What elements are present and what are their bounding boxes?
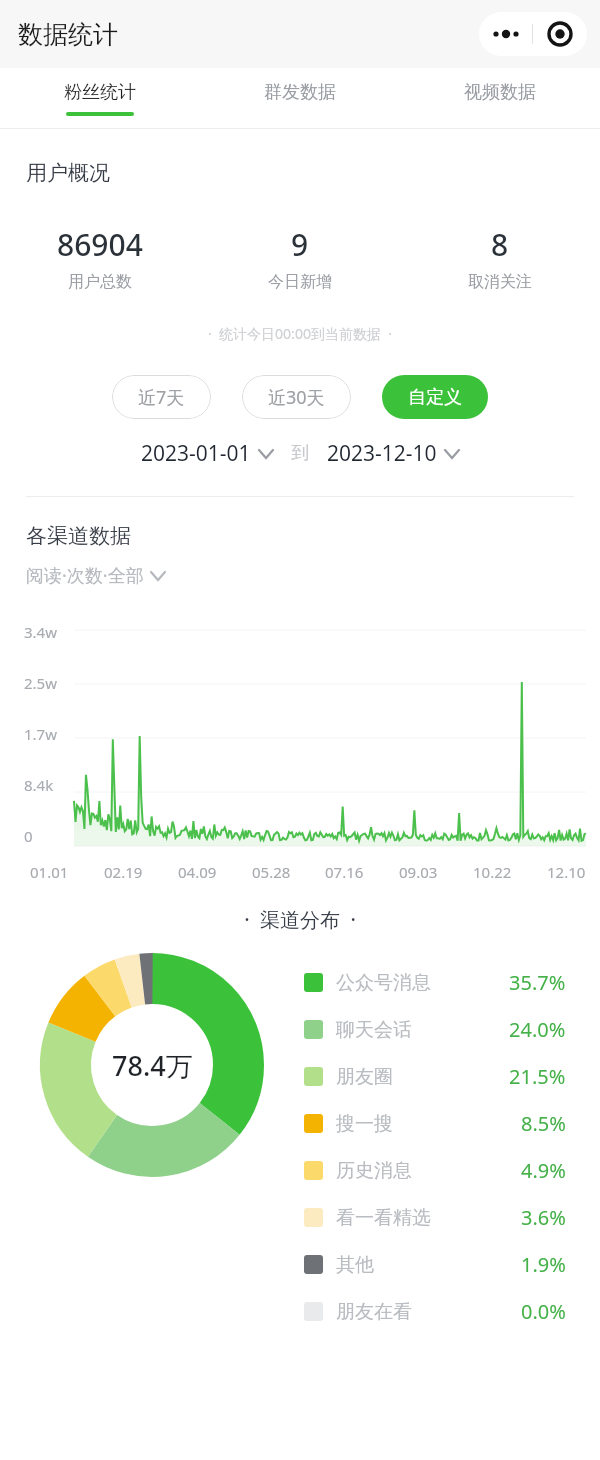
button[interactable]: 视频数据 bbox=[400, 68, 600, 128]
staticText: 朋友圈 bbox=[336, 1065, 509, 1089]
staticText: 1.9% bbox=[521, 1251, 566, 1278]
button[interactable]: 86904 bbox=[0, 224, 200, 292]
staticText: 12.10 bbox=[547, 862, 586, 882]
staticText: 1.7w bbox=[24, 724, 57, 744]
staticText: 78.4万 bbox=[112, 1047, 193, 1084]
staticText: 其他 bbox=[336, 1253, 521, 1277]
staticText: · 渠道分布 · bbox=[0, 906, 600, 933]
staticText: 8.5% bbox=[521, 1110, 566, 1137]
staticText: 朋友在看 bbox=[336, 1300, 521, 1324]
staticText: 群发数据 bbox=[264, 81, 336, 104]
staticText: 3.4w bbox=[24, 622, 57, 642]
button[interactable]: Close bbox=[533, 12, 587, 56]
staticText: 86904 bbox=[57, 224, 143, 265]
staticText: 01.01 bbox=[30, 862, 69, 882]
staticText: 公众号消息 bbox=[336, 971, 509, 995]
staticText: 阅读·次数·全部 bbox=[26, 563, 144, 588]
button[interactable]: 看一看精选 bbox=[304, 1194, 600, 1241]
staticText: 视频数据 bbox=[464, 81, 536, 104]
staticText: 0.0% bbox=[521, 1298, 566, 1325]
button[interactable]: 2023-01-01 bbox=[141, 439, 273, 468]
staticText: 聊天会话 bbox=[336, 1018, 509, 1042]
staticText: 数据统计 bbox=[18, 19, 118, 50]
button[interactable]: 朋友在看 bbox=[304, 1288, 600, 1335]
button[interactable]: More bbox=[479, 12, 532, 56]
staticText: 8 bbox=[491, 224, 509, 265]
staticText: 近30天 bbox=[268, 385, 325, 410]
staticText: 各渠道数据 bbox=[26, 523, 131, 549]
staticText: 用户概况 bbox=[26, 160, 110, 186]
staticText: 07.16 bbox=[325, 862, 364, 882]
staticText: 09.03 bbox=[399, 862, 438, 882]
staticText: 今日新增 bbox=[268, 272, 332, 292]
button[interactable]: 8 bbox=[400, 224, 600, 292]
staticText: 看一看精选 bbox=[336, 1206, 521, 1230]
button[interactable]: 群发数据 bbox=[200, 68, 400, 128]
button[interactable]: 2023-12-10 bbox=[327, 439, 459, 468]
staticText: 近7天 bbox=[138, 385, 185, 410]
staticText: 21.5% bbox=[509, 1063, 566, 1090]
button[interactable]: 公众号消息 bbox=[304, 959, 600, 1006]
button[interactable]: 近30天 bbox=[268, 375, 325, 419]
button[interactable]: 其他 bbox=[304, 1241, 600, 1288]
button[interactable]: 近7天 bbox=[138, 375, 185, 419]
staticText: 取消关注 bbox=[468, 272, 532, 292]
staticText: 2.5w bbox=[24, 673, 57, 693]
staticText: 10.22 bbox=[473, 862, 512, 882]
staticText: 到 bbox=[291, 442, 309, 465]
button[interactable]: 自定义 bbox=[408, 375, 462, 419]
button[interactable]: 阅读·次数·全部 bbox=[26, 563, 165, 588]
staticText: 2023-01-01 bbox=[141, 439, 251, 468]
staticText: 3.6% bbox=[521, 1204, 566, 1231]
staticText: 8.4k bbox=[24, 775, 54, 795]
button[interactable]: 9 bbox=[200, 224, 400, 292]
staticText: · 统计今日00:00到当前数据 · bbox=[0, 324, 600, 343]
button[interactable]: 历史消息 bbox=[304, 1147, 600, 1194]
button[interactable]: 粉丝统计 bbox=[0, 68, 200, 128]
staticText: 05.28 bbox=[252, 862, 291, 882]
staticText: 历史消息 bbox=[336, 1159, 521, 1183]
button[interactable]: 聊天会话 bbox=[304, 1006, 600, 1053]
staticText: 0 bbox=[24, 826, 33, 846]
staticText: 35.7% bbox=[509, 969, 566, 996]
staticText: 2023-12-10 bbox=[327, 439, 437, 468]
staticText: 24.0% bbox=[509, 1016, 566, 1043]
button[interactable]: 搜一搜 bbox=[304, 1100, 600, 1147]
button[interactable]: 朋友圈 bbox=[304, 1053, 600, 1100]
staticText: 用户总数 bbox=[68, 272, 132, 292]
staticText: 自定义 bbox=[408, 386, 462, 409]
staticText: 4.9% bbox=[521, 1157, 566, 1184]
staticText: 搜一搜 bbox=[336, 1112, 521, 1136]
staticText: 粉丝统计 bbox=[64, 81, 136, 104]
staticText: 04.09 bbox=[178, 862, 217, 882]
staticText: 02.19 bbox=[104, 862, 143, 882]
staticText: 9 bbox=[291, 224, 309, 265]
